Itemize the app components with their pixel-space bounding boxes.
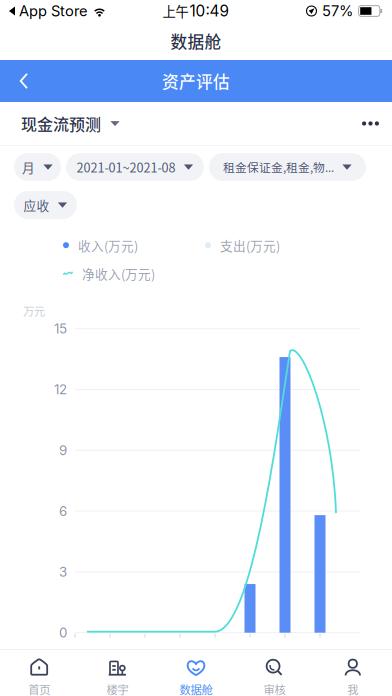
staticText: 审核 <box>263 681 285 696</box>
button[interactable]: 2021-01~2021-08 <box>66 153 204 181</box>
button[interactable]: 数据舱 <box>157 650 235 696</box>
staticText: 2021-01~2021-08 <box>76 158 175 176</box>
staticText: 12 <box>54 381 67 397</box>
staticText: 数据舱 <box>170 29 221 53</box>
staticText: 月 <box>22 158 35 176</box>
staticText: 我 <box>347 681 358 696</box>
staticText: 净收入(万元) <box>82 264 155 283</box>
staticText: App Store <box>19 2 88 20</box>
staticText: 10:49 <box>189 2 229 20</box>
staticText: 3 <box>59 564 67 580</box>
staticText: 楼宇 <box>107 681 129 696</box>
button[interactable]: 租金保证金,租金,物... <box>209 153 366 181</box>
staticText: 15 <box>54 321 67 337</box>
button[interactable]: 首页 <box>0 650 78 696</box>
button[interactable]: 楼宇 <box>78 650 157 696</box>
staticText: 数据舱 <box>179 681 212 696</box>
button[interactable]: 应收 <box>14 191 77 219</box>
button[interactable]: 我 <box>314 650 392 696</box>
staticText: 万元 <box>23 302 45 319</box>
button[interactable]: 审核 <box>235 650 314 696</box>
button[interactable]: 更多 <box>354 109 379 138</box>
staticText: 租金保证金,租金,物... <box>223 158 334 175</box>
staticText: 9 <box>59 442 67 458</box>
staticText: 资产评估 <box>162 69 230 93</box>
staticText: 首页 <box>28 681 50 696</box>
staticText: 上午 <box>162 1 188 21</box>
staticText: 收入(万元) <box>78 236 138 254</box>
staticText: 应收 <box>23 196 49 214</box>
button[interactable]: 现金流预测 <box>21 102 120 145</box>
staticText: 57% <box>322 2 353 20</box>
staticText: 0 <box>59 625 67 641</box>
button[interactable]: 返回 <box>0 60 44 102</box>
staticText: 现金流预测 <box>21 112 101 135</box>
staticText: 6 <box>59 503 67 519</box>
staticText: 支出(万元) <box>220 236 280 254</box>
button[interactable]: 月 <box>14 153 61 181</box>
